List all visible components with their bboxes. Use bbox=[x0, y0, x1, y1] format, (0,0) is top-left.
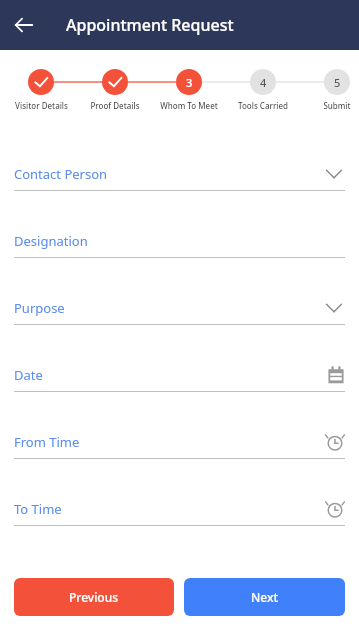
staticText: 4 bbox=[260, 75, 267, 90]
staticText: Date bbox=[14, 366, 43, 384]
staticText: To Time bbox=[14, 500, 62, 518]
button[interactable]: Designation bbox=[14, 229, 345, 258]
staticText: Contact Person bbox=[14, 165, 108, 183]
button[interactable]: Next bbox=[184, 578, 345, 616]
button[interactable]: Purpose bbox=[14, 296, 345, 325]
button[interactable]: Back bbox=[8, 9, 40, 41]
staticText: 5 bbox=[334, 75, 341, 90]
button[interactable]: To Time bbox=[14, 497, 345, 526]
button[interactable]: Contact Person bbox=[14, 162, 345, 191]
button[interactable]: Previous bbox=[14, 578, 174, 616]
staticText: From Time bbox=[14, 433, 80, 451]
staticText: Submit bbox=[323, 100, 351, 111]
staticText: Proof Details bbox=[90, 100, 140, 111]
staticText: Appointment Request bbox=[66, 14, 234, 36]
staticText: Whom To Meet bbox=[160, 100, 218, 111]
button[interactable]: From Time bbox=[14, 430, 345, 459]
staticText: Previous bbox=[69, 589, 119, 605]
staticText: Next bbox=[251, 589, 279, 605]
staticText: Tools Carried bbox=[238, 100, 288, 111]
staticText: Purpose bbox=[14, 299, 65, 317]
staticText: Designation bbox=[14, 232, 88, 250]
button[interactable]: Date bbox=[14, 363, 345, 392]
staticText: Visitor Details bbox=[15, 100, 68, 111]
staticText: 3 bbox=[186, 75, 193, 90]
